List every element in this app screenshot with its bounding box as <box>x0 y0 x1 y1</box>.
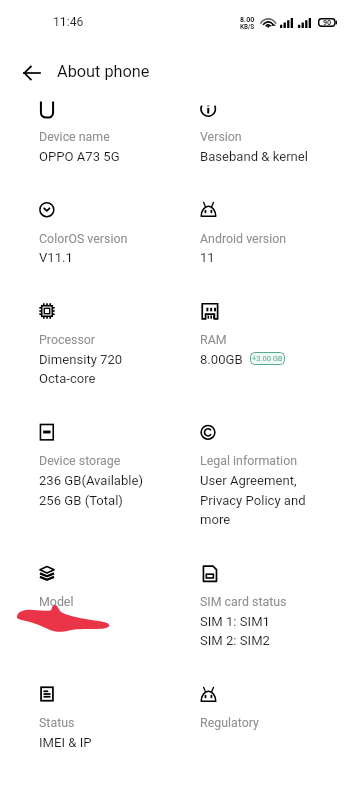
staticText: ColorOS version <box>39 231 128 246</box>
button[interactable]: Android version <box>192 195 337 263</box>
staticText: Regulatory <box>200 715 259 730</box>
staticText: Dimensity 720 <box>39 352 123 367</box>
button[interactable]: Device name <box>31 94 176 162</box>
button[interactable]: Model <box>31 559 176 627</box>
button[interactable]: Regulatory <box>192 680 337 748</box>
button[interactable]: Version <box>192 94 337 162</box>
staticText: 11:46 <box>53 15 84 29</box>
staticText: Device name <box>39 129 110 144</box>
button[interactable]: Processor <box>31 297 176 384</box>
staticText: 8.00GB <box>200 352 243 367</box>
staticText: OPPO A73 5G <box>39 149 120 164</box>
staticText: SIM 1: SIM1 <box>200 614 270 629</box>
staticText: Baseband & kernel <box>200 149 308 164</box>
staticText: +3.00 GB <box>252 354 283 363</box>
staticText: IMEI & IP <box>39 735 92 750</box>
button[interactable]: ColorOS version <box>31 195 176 263</box>
staticText: Android version <box>200 231 287 246</box>
staticText: 256 GB (Total) <box>39 493 123 508</box>
button[interactable]: RAM <box>192 297 337 365</box>
staticText: more <box>200 512 231 527</box>
button[interactable]: Status <box>31 680 176 748</box>
staticText: Octa-core <box>39 371 96 386</box>
staticText: 8.00 <box>240 15 255 23</box>
staticText: Legal information <box>200 453 298 468</box>
staticText: 236 GB(Available) <box>39 473 144 488</box>
staticText: SIM 2: SIM2 <box>200 633 270 648</box>
button[interactable]: SIM card status <box>192 559 337 646</box>
staticText: SIM card status <box>200 594 287 609</box>
staticText: Device storage <box>39 453 121 468</box>
staticText: Version <box>200 129 242 144</box>
staticText: Model <box>39 594 74 609</box>
staticText: User Agreement, <box>200 473 297 488</box>
staticText: Status <box>39 715 75 730</box>
button[interactable]: Back <box>9 50 54 95</box>
staticText: KB/S <box>240 23 255 30</box>
staticText: Privacy Policy and <box>200 493 306 508</box>
button[interactable]: Legal information <box>192 418 337 525</box>
staticText: Processor <box>39 332 96 347</box>
staticText: About phone <box>57 62 150 81</box>
staticText: 11 <box>200 250 215 265</box>
staticText: V11.1 <box>39 250 73 265</box>
staticText: 90 <box>323 18 332 26</box>
staticText: RAM <box>200 332 227 347</box>
button[interactable]: Device storage <box>31 418 176 505</box>
